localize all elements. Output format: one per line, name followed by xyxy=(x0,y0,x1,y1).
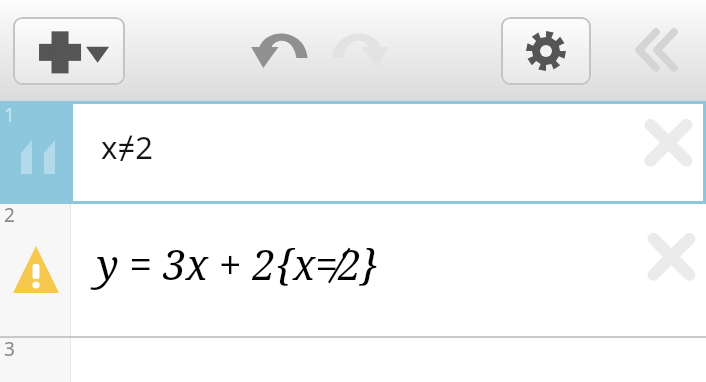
button[interactable]: 1 xyxy=(0,104,706,201)
button[interactable]: 3 xyxy=(0,338,706,382)
staticText: 2 xyxy=(4,202,15,228)
button[interactable]: Settings xyxy=(501,17,591,85)
button[interactable]: Undo xyxy=(253,25,315,75)
staticText: 1 xyxy=(4,102,15,128)
button[interactable]: Add expression xyxy=(13,17,125,85)
staticText: 3 xyxy=(4,336,15,362)
button[interactable]: Redo xyxy=(325,25,387,75)
staticText: y = 3x + 2{x≠2} xyxy=(97,236,379,292)
staticText: x≠2 xyxy=(101,126,153,168)
button[interactable]: Collapse list xyxy=(622,22,684,78)
button[interactable]: Delete expression xyxy=(634,204,706,336)
button[interactable]: 2 xyxy=(0,204,706,336)
button[interactable]: Delete expression xyxy=(631,104,703,201)
